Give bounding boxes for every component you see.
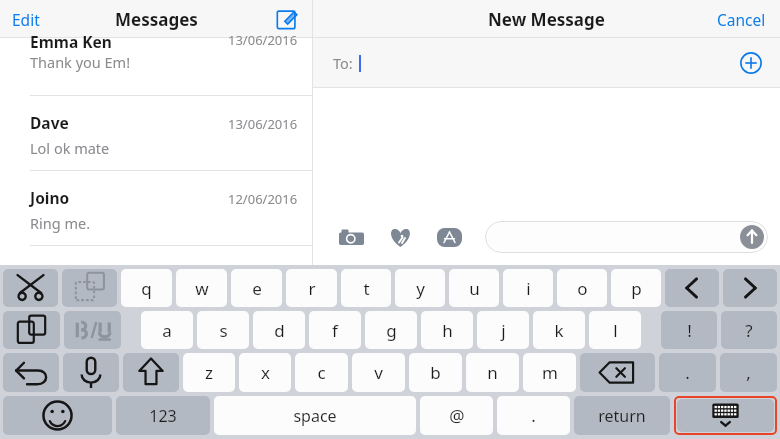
staticText: p <box>631 277 642 300</box>
button[interactable]: 123 <box>116 396 210 435</box>
button[interactable]: Camera <box>335 221 367 253</box>
staticText: New Message <box>488 8 605 31</box>
button[interactable]: ? <box>721 311 777 349</box>
staticText: x <box>261 361 270 384</box>
button[interactable]: d <box>253 311 305 349</box>
staticText: space <box>293 405 337 427</box>
button[interactable]: g <box>365 311 417 349</box>
button[interactable]: Dave <box>0 96 312 171</box>
button[interactable]: Send <box>738 223 766 251</box>
button[interactable]: Dictate <box>63 353 119 392</box>
staticText: 123 <box>149 405 177 427</box>
staticText: w <box>195 277 209 300</box>
button[interactable]: Shift <box>123 353 179 392</box>
staticText: d <box>274 319 285 342</box>
staticText: c <box>317 361 326 384</box>
staticText: . <box>685 361 690 384</box>
button[interactable]: Joino <box>0 171 312 246</box>
button[interactable]: Emoji <box>3 396 112 435</box>
staticText: ? <box>745 319 753 342</box>
button[interactable]: return <box>574 396 670 435</box>
button[interactable]: n <box>466 353 519 392</box>
button[interactable]: o <box>557 269 607 307</box>
button[interactable]: Select all <box>62 269 117 307</box>
button[interactable]: Undo <box>3 353 59 392</box>
staticText: Messages <box>115 8 198 31</box>
button[interactable]: r <box>286 269 337 307</box>
staticText: Ring me. <box>30 213 91 233</box>
staticText: , <box>746 361 751 384</box>
button[interactable]: Delete <box>580 353 655 392</box>
staticText: @ <box>449 404 465 427</box>
staticText: s <box>219 319 228 342</box>
button[interactable]: x <box>239 353 291 392</box>
staticText: i <box>526 277 531 300</box>
staticText: Edit <box>12 9 40 30</box>
staticText: v <box>374 361 383 384</box>
button[interactable]: Cancel <box>709 4 774 35</box>
button[interactable]: p <box>611 269 661 307</box>
button[interactable]: y <box>395 269 445 307</box>
button[interactable]: @ <box>420 396 493 435</box>
button[interactable]: . <box>659 353 716 392</box>
button[interactable]: Compose new message <box>271 3 303 35</box>
staticText: To: <box>333 53 353 73</box>
button[interactable]: Edit <box>4 4 48 35</box>
staticText: Thank you Em! <box>30 52 131 72</box>
button[interactable]: c <box>295 353 348 392</box>
button[interactable]: h <box>421 311 473 349</box>
staticText: m <box>542 361 558 384</box>
button[interactable]: Cut <box>3 269 58 307</box>
staticText: Dave <box>30 112 69 133</box>
staticText: f <box>332 319 338 342</box>
button[interactable]: e <box>231 269 282 307</box>
button[interactable]: w <box>176 269 227 307</box>
button[interactable]: j <box>477 311 529 349</box>
staticText: k <box>554 319 564 342</box>
button[interactable]: App Store <box>433 221 465 253</box>
staticText: . <box>531 404 536 427</box>
staticText: z <box>205 361 213 384</box>
staticText: j <box>501 319 506 342</box>
button[interactable]: Emma Ken <box>0 38 312 96</box>
staticText: 13/06/2016 <box>228 115 298 133</box>
button[interactable]: Digital Touch <box>384 221 416 253</box>
staticText: return <box>598 405 646 427</box>
button[interactable]: Add contact <box>735 47 767 79</box>
button[interactable]: q <box>121 269 172 307</box>
button[interactable]: Move left <box>665 269 719 307</box>
button[interactable]: v <box>352 353 405 392</box>
staticText: ! <box>687 319 692 342</box>
staticText: l <box>613 319 618 342</box>
button[interactable]: b <box>409 353 462 392</box>
button[interactable]: To: <box>313 38 780 88</box>
button[interactable]: space <box>214 396 416 435</box>
staticText: h <box>442 319 453 342</box>
staticText: n <box>487 361 498 384</box>
button[interactable]: l <box>589 311 641 349</box>
button[interactable]: z <box>183 353 235 392</box>
staticText: b <box>430 361 441 384</box>
button[interactable]: Paste <box>3 311 60 349</box>
button[interactable]: . <box>497 396 570 435</box>
button[interactable]: i <box>503 269 553 307</box>
button[interactable]: s <box>197 311 249 349</box>
button[interactable]: Hide keyboard <box>677 399 774 432</box>
button[interactable]: Move right <box>723 269 777 307</box>
button[interactable]: , <box>720 353 777 392</box>
button[interactable]: Text formatting <box>64 311 121 349</box>
button[interactable]: Send <box>485 221 768 253</box>
staticText: e <box>252 277 262 300</box>
button[interactable]: ! <box>661 311 717 349</box>
button[interactable]: a <box>141 311 193 349</box>
staticText: Joino <box>30 187 70 208</box>
button[interactable]: f <box>309 311 361 349</box>
button[interactable]: u <box>449 269 499 307</box>
staticText: Emma Ken <box>30 31 112 52</box>
staticText: 12/06/2016 <box>228 190 298 208</box>
button[interactable]: m <box>523 353 576 392</box>
staticText: Cancel <box>717 9 766 30</box>
button[interactable]: k <box>533 311 585 349</box>
button[interactable]: t <box>341 269 391 307</box>
staticText: Lol ok mate <box>30 138 110 158</box>
